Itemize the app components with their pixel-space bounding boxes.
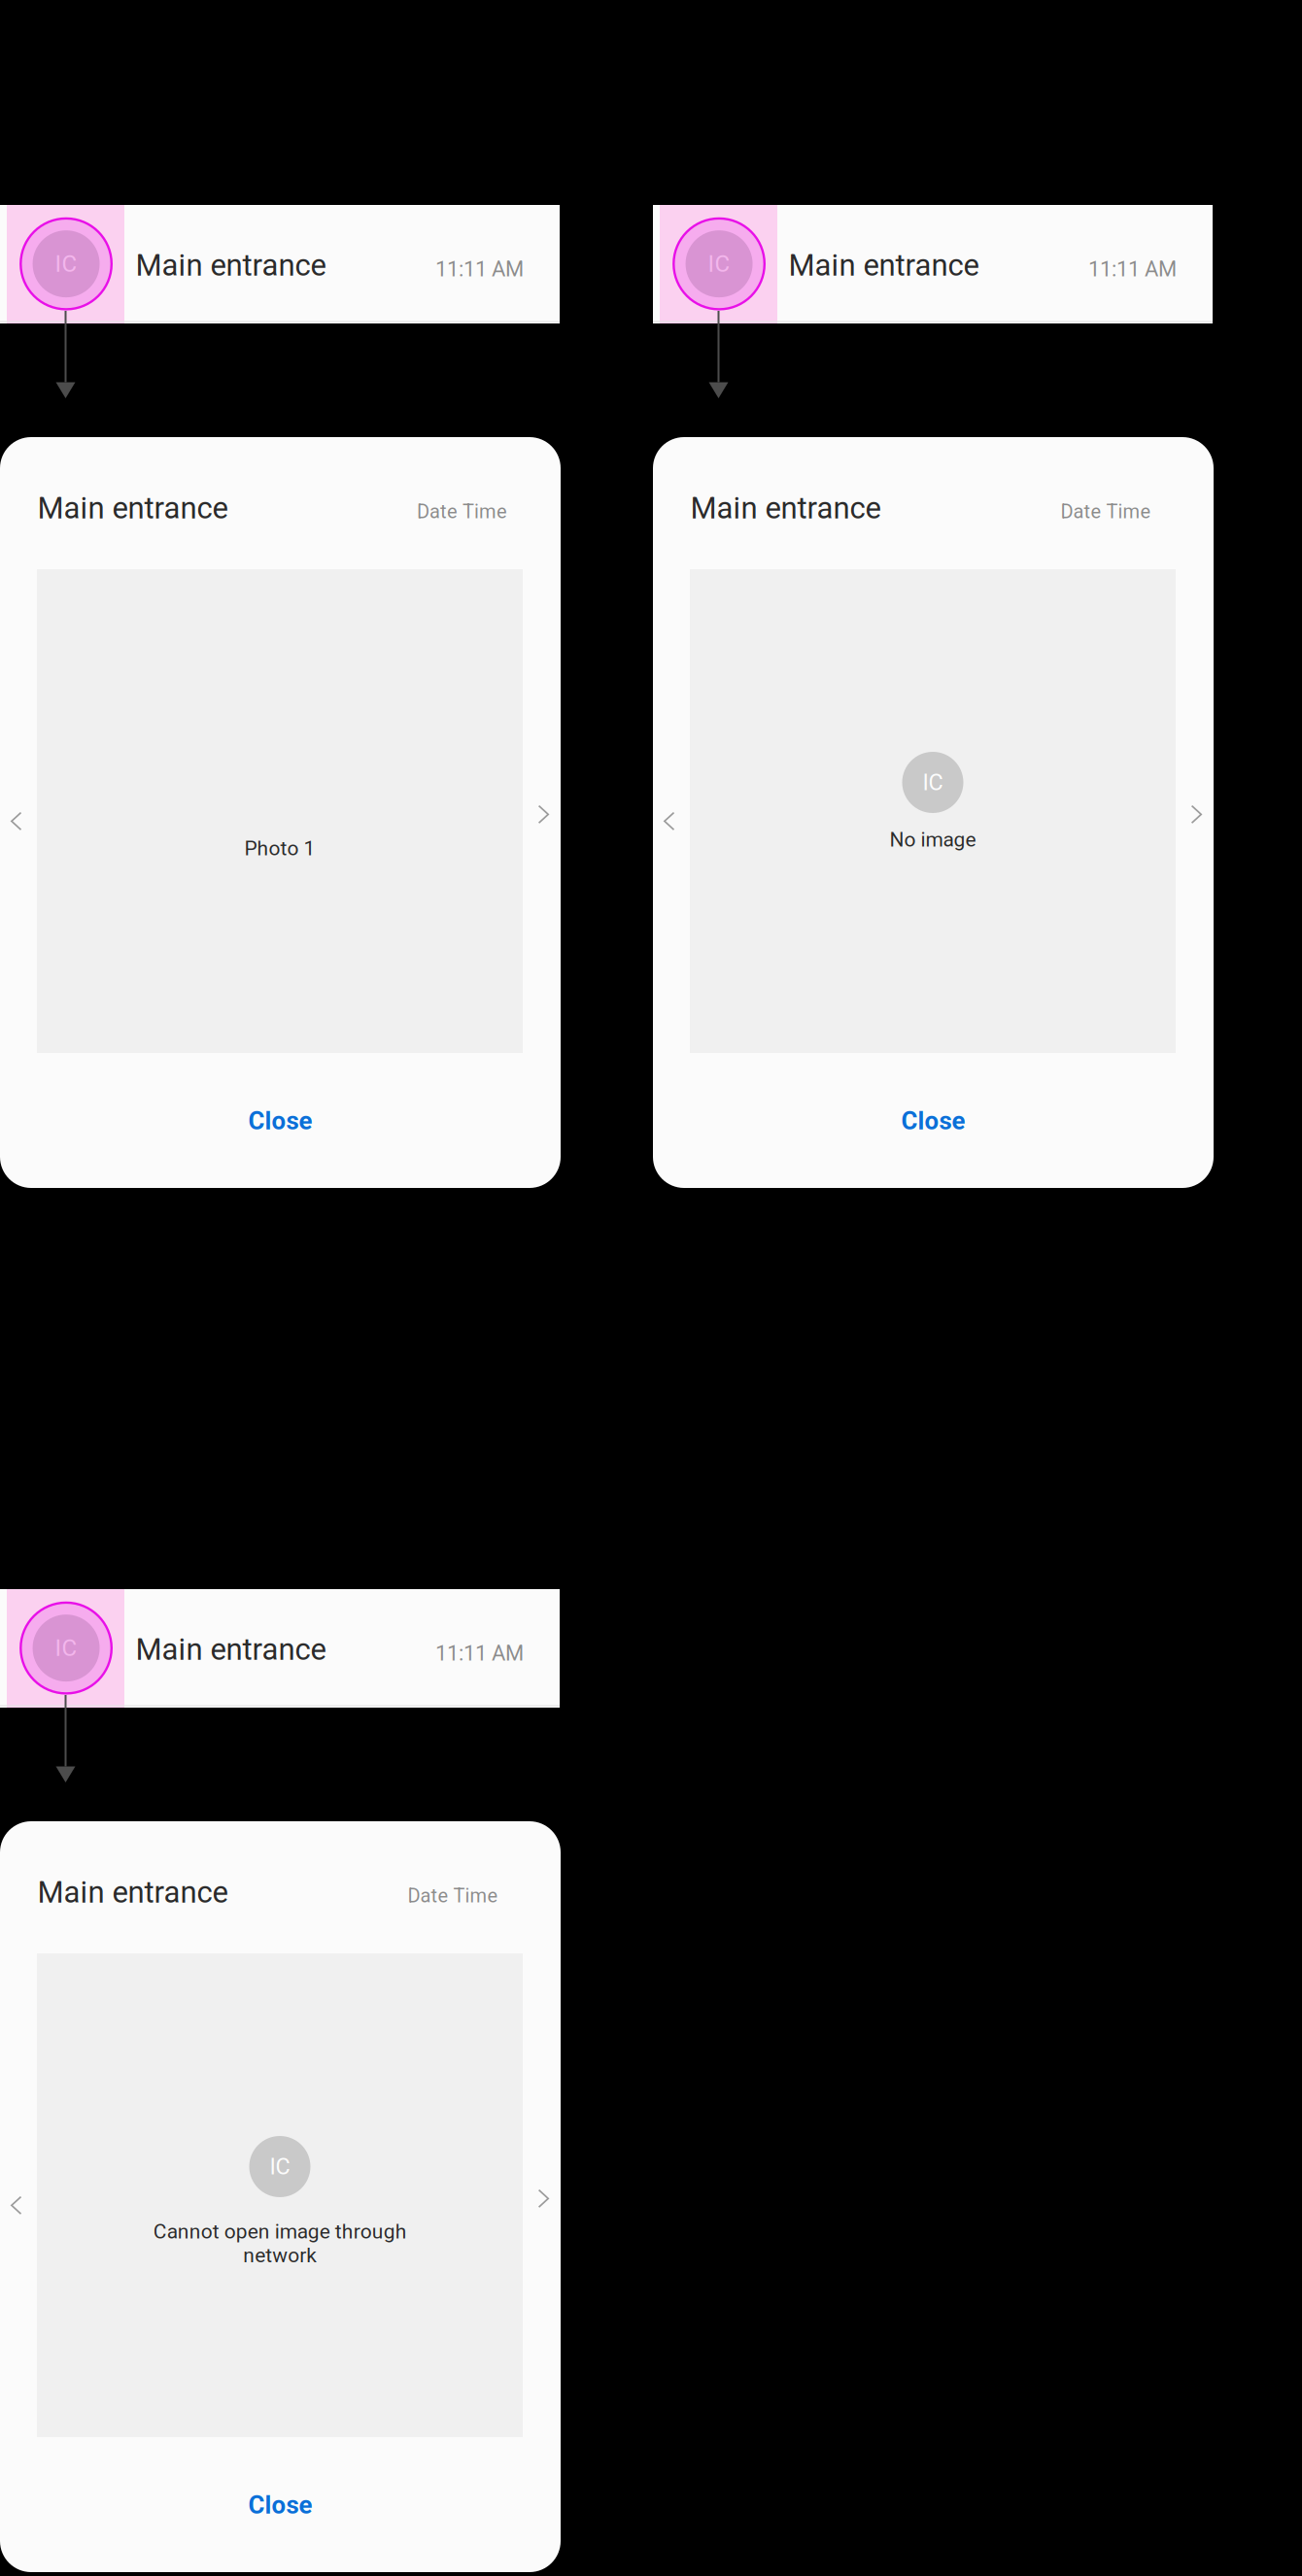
staticText: IC [55,250,77,278]
button[interactable]: Next photo [1177,787,1214,842]
staticText: IC [708,250,730,278]
button[interactable]: Previous photo [0,2178,37,2233]
staticText: Date Time [417,500,507,523]
staticText: Photo 1 [244,836,315,860]
staticText: Date Time [1061,500,1151,523]
staticText: Main entrance [788,248,979,283]
staticText: IC [55,1634,77,1662]
button[interactable]: IC [653,205,1213,323]
staticText: Close [248,1106,312,1136]
button[interactable]: Previous photo [0,794,37,849]
staticText: IC [270,2153,290,2180]
staticText: Cannot open image through network [153,2220,407,2267]
staticText: Main entrance [37,491,228,526]
button[interactable]: IC [0,1589,560,1708]
button[interactable]: Next photo [524,2171,561,2226]
staticText: Close [248,2490,312,2520]
button[interactable]: Close [0,2468,561,2542]
staticText: Date Time [408,1884,498,1907]
staticText: 11:11 AM [435,256,524,281]
button[interactable]: IC [0,205,560,323]
staticText: Main entrance [690,491,881,526]
staticText: No image [890,828,976,851]
button[interactable]: Previous photo [653,794,690,849]
button[interactable]: Close [0,1084,561,1158]
staticText: Main entrance [37,1875,228,1910]
button[interactable]: Close [653,1084,1214,1158]
staticText: 11:11 AM [1088,256,1177,281]
staticText: Close [901,1106,965,1136]
staticText: IC [923,769,943,796]
staticText: 11:11 AM [435,1641,524,1666]
staticText: Main entrance [136,248,326,283]
staticText: Main entrance [136,1632,326,1667]
button[interactable]: Next photo [524,787,561,842]
